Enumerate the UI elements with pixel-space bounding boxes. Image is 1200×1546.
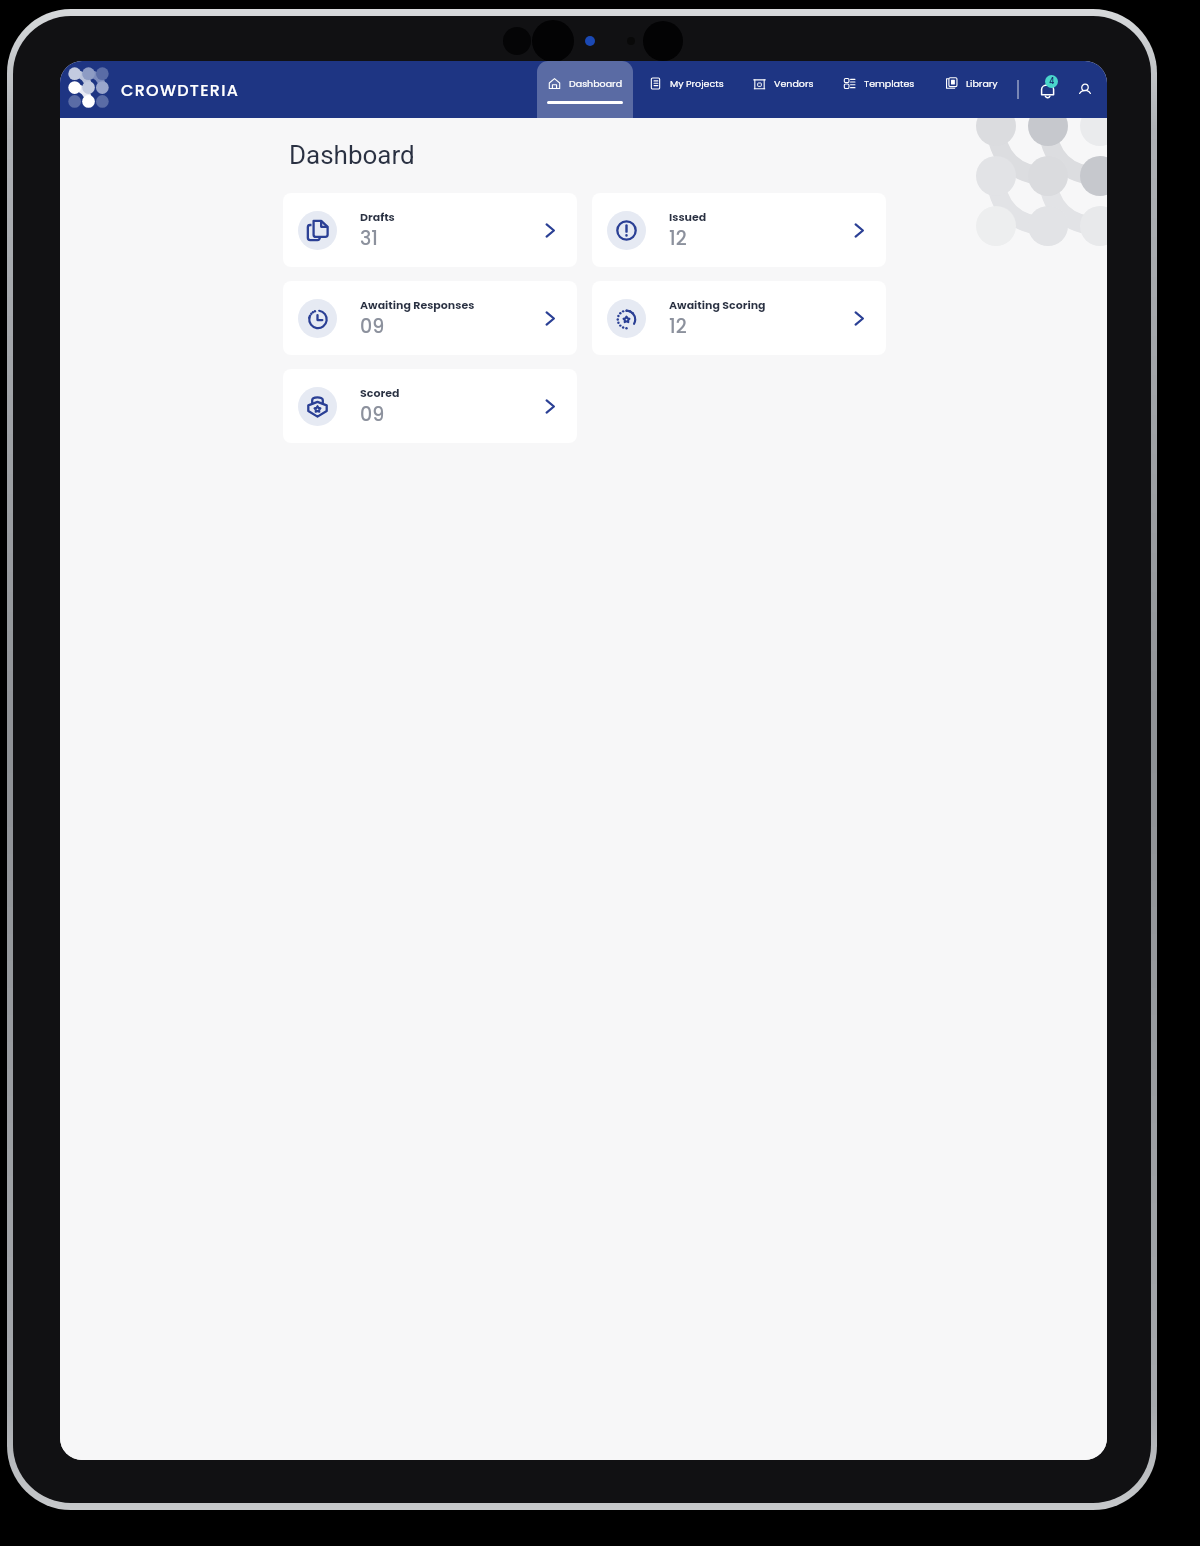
staticText: 12 (669, 225, 687, 252)
button[interactable]: Dashboard (537, 61, 633, 118)
button[interactable]: Scored (283, 369, 577, 443)
staticText: Library (966, 77, 998, 90)
button[interactable]: Issued (592, 193, 886, 267)
button[interactable]: Templates (843, 61, 915, 118)
button[interactable]: Notifications (1038, 80, 1058, 100)
staticText: Issued (669, 209, 707, 224)
staticText: Dashboard (289, 140, 415, 170)
button[interactable]: Profile (1076, 81, 1094, 99)
staticText: 09 (360, 313, 385, 340)
button[interactable]: Awaiting Responses (283, 281, 577, 355)
staticText: CROWDTERIA (121, 79, 240, 101)
staticText: Templates (864, 77, 915, 90)
staticText: 09 (360, 401, 385, 428)
button[interactable]: Drafts (283, 193, 577, 267)
button[interactable]: My Projects (649, 61, 724, 118)
button[interactable]: Vendors (753, 61, 814, 118)
staticText: My Projects (670, 77, 724, 90)
staticText: Dashboard (569, 77, 623, 90)
staticText: Vendors (774, 77, 814, 90)
staticText: Awaiting Scoring (669, 297, 766, 312)
staticText: 4 (1049, 76, 1055, 87)
button[interactable]: Library (945, 61, 998, 118)
staticText: Awaiting Responses (360, 297, 475, 312)
button[interactable]: Awaiting Scoring (592, 281, 886, 355)
staticText: Scored (360, 385, 400, 400)
staticText: 31 (360, 225, 378, 252)
staticText: 12 (669, 313, 687, 340)
staticText: Drafts (360, 209, 395, 224)
